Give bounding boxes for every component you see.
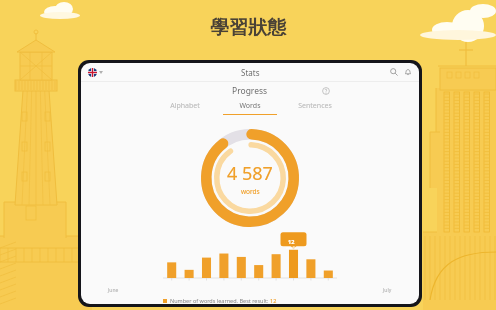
button[interactable]: Help bbox=[321, 86, 331, 96]
staticText: words bbox=[241, 187, 260, 196]
button[interactable]: Choose language bbox=[86, 66, 105, 79]
staticText: Number of words learned. Best result: bbox=[170, 297, 270, 304]
button[interactable]: Alphabet bbox=[153, 99, 217, 116]
staticText: June bbox=[108, 287, 119, 294]
staticText: July bbox=[383, 287, 392, 294]
staticText: words bbox=[286, 245, 297, 250]
staticText: 4 587 bbox=[227, 161, 273, 186]
button[interactable]: Search bbox=[389, 67, 399, 77]
staticText: 學習狀態 bbox=[210, 16, 286, 40]
staticText: Sentences bbox=[298, 101, 332, 111]
button[interactable]: Notifications bbox=[403, 67, 413, 77]
staticText: Alphabet bbox=[170, 101, 200, 111]
button[interactable]: Sentences bbox=[282, 99, 347, 116]
staticText: 12 bbox=[270, 297, 277, 304]
staticText: Progress bbox=[232, 85, 268, 97]
staticText: Words bbox=[239, 101, 261, 111]
button[interactable]: Words bbox=[217, 99, 282, 116]
staticText: Stats bbox=[241, 67, 260, 78]
staticText: 12 bbox=[288, 238, 295, 245]
